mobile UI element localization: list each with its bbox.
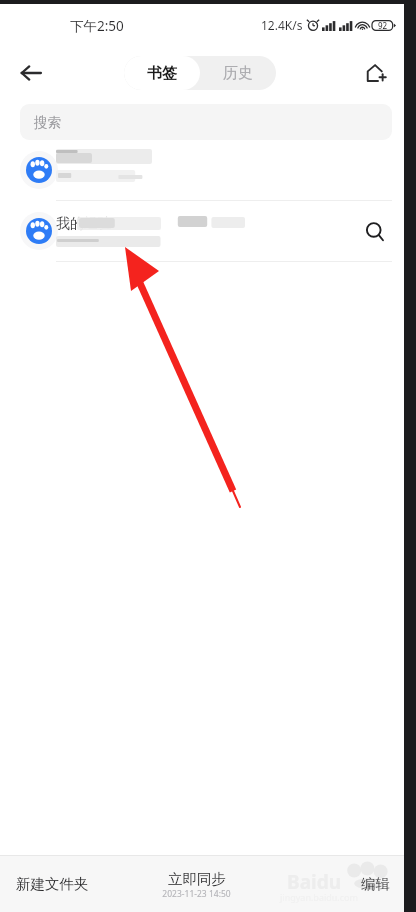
staticText: Baidu	[287, 869, 342, 895]
staticText: 编辑	[361, 875, 390, 893]
staticText: 搜索	[34, 114, 61, 131]
staticText: 92	[378, 20, 388, 31]
button[interactable]: Back	[10, 52, 52, 94]
button[interactable]: 立即同步	[162, 870, 231, 900]
staticText: 2023-11-23 14:50	[162, 888, 231, 900]
button[interactable]: 新建文件夹	[16, 875, 89, 893]
staticText: 立即同步	[168, 870, 226, 888]
staticText: 下午2:50	[70, 17, 124, 35]
staticText: 12.4K/s	[261, 17, 303, 33]
staticText: 新建文件夹	[16, 875, 89, 893]
button[interactable]: Add bookmark	[354, 52, 396, 94]
staticText: 历史	[223, 64, 253, 83]
button[interactable]: 搜索	[20, 104, 392, 140]
staticText: 书签	[147, 64, 177, 83]
button[interactable]	[0, 140, 404, 200]
button[interactable]: 我的经验	[0, 201, 404, 261]
button[interactable]: 编辑	[361, 875, 390, 893]
button[interactable]: Search in folder	[354, 211, 394, 251]
staticText: 我的经验	[56, 215, 112, 233]
button[interactable]: 书签	[124, 56, 200, 90]
button[interactable]: 历史	[200, 56, 276, 90]
